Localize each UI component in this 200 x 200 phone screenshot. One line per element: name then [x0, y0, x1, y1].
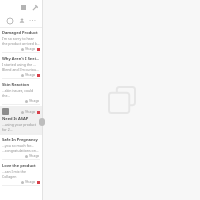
button[interactable]: More options [28, 16, 37, 25]
staticText: …using your product for 2… …'m experienc… [2, 122, 40, 132]
staticText: Damaged Product [2, 30, 38, 35]
staticText: 9h ago [25, 110, 36, 114]
staticText: Need It ASAP [2, 116, 29, 121]
button[interactable]: 9h ago [0, 106, 42, 135]
staticText: 9h ago [29, 154, 40, 158]
staticText: …you so much for… …congratulations on… [2, 143, 39, 153]
button[interactable]: All conversations [5, 16, 14, 25]
staticText: 9h ago [25, 73, 36, 77]
button[interactable]: Compose [19, 3, 28, 12]
staticText: …skin issues, could the… …ing any reacti… [2, 88, 40, 98]
staticText: 9h ago [25, 180, 36, 184]
staticText: 9h ago [25, 47, 36, 51]
button[interactable]: Assigned to me [17, 16, 26, 25]
button[interactable]: Safe In Pregnancy [0, 135, 42, 161]
button[interactable]: Damaged Product [0, 28, 42, 54]
button[interactable]: Skin Reaction [0, 80, 42, 106]
staticText: …can I mix the Collagen …coffee or smoot… [2, 169, 40, 179]
staticText: Why Aren't I Seeing Results? [2, 56, 40, 61]
button[interactable]: Love the product [0, 161, 42, 187]
staticText: Safe In Pregnancy [2, 137, 38, 142]
staticText: Skin Reaction [2, 82, 30, 87]
staticText: Love the product [2, 163, 36, 168]
button[interactable]: Resize panes [39, 118, 45, 126]
staticText: I started using the … Blend and I'm curi… [2, 62, 40, 72]
button[interactable]: Why Aren't I Seeing Results? [0, 54, 42, 80]
button[interactable]: Call [30, 3, 39, 12]
staticText: I'm so sorry to hear the product arrived… [2, 36, 40, 46]
staticText: 9h ago [29, 99, 40, 103]
